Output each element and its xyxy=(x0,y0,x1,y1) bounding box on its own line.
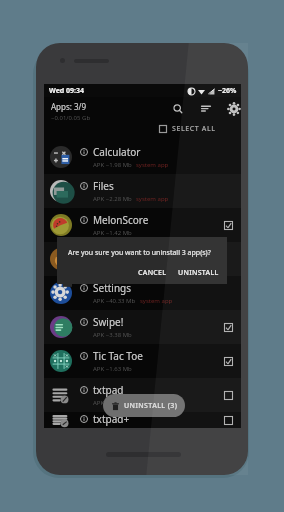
staticText: UNINSTALL (3) xyxy=(124,401,178,411)
staticText: APK ~40.33 Mb xyxy=(93,297,136,305)
staticText: APK ~2.05 Mb xyxy=(93,399,132,407)
button[interactable]: MelonScore xyxy=(44,208,241,242)
staticText: system app xyxy=(136,161,169,169)
button[interactable]: CANCEL xyxy=(135,266,170,280)
staticText: APK ~1.63 Mb xyxy=(93,365,132,373)
staticText: system app xyxy=(140,297,173,305)
button[interactable]: Sort xyxy=(198,101,213,116)
staticText: txtpad+ xyxy=(93,412,130,426)
staticText: APK ~1.98 Mb xyxy=(93,161,132,169)
button[interactable]: Swipe! xyxy=(44,310,241,344)
button[interactable]: UNINSTALL (3) xyxy=(103,394,185,417)
staticText: Are you sure you want to uninstall 3 app… xyxy=(68,248,211,258)
staticText: Settings xyxy=(93,281,132,295)
staticText: ~26% xyxy=(218,86,237,96)
button[interactable]: Files xyxy=(44,174,241,208)
staticText: UNINSTALL xyxy=(178,268,219,278)
staticText: Tic Tac Toe xyxy=(93,349,143,363)
button[interactable]: UNINSTALL xyxy=(175,266,222,280)
staticText: system app xyxy=(136,263,169,271)
staticText: ~0.01/0.05 Gb xyxy=(51,114,91,122)
button[interactable]: txtpad xyxy=(44,378,241,412)
button[interactable]: Settings xyxy=(44,276,241,310)
staticText: txtpad xyxy=(93,383,124,397)
staticText: system app xyxy=(136,195,169,203)
staticText: APK ~2.28 Mb xyxy=(93,195,132,203)
staticText: Music xyxy=(93,247,121,261)
button[interactable]: Music xyxy=(44,242,241,276)
button[interactable]: Select txtpad+ xyxy=(220,412,236,428)
button[interactable]: txtpad+ xyxy=(44,412,241,428)
button[interactable]: Settings xyxy=(226,101,241,116)
staticText: SELECT ALL xyxy=(172,124,216,134)
staticText: MelonScore xyxy=(93,213,149,227)
staticText: APK ~1.42 Mb xyxy=(93,229,132,237)
staticText: Files xyxy=(93,179,114,193)
button[interactable]: Tic Tac Toe xyxy=(44,344,241,378)
button[interactable]: Calculator xyxy=(44,140,241,174)
staticText: Apps: 3/9 xyxy=(51,101,87,112)
staticText: Calculator xyxy=(93,145,141,159)
button[interactable]: SELECT ALL xyxy=(157,123,218,135)
staticText: APK ~3.38 Mb xyxy=(93,331,132,339)
staticText: Swipe! xyxy=(93,315,124,329)
button[interactable]: Select txtpad xyxy=(220,387,236,403)
staticText: CANCEL xyxy=(138,268,167,278)
button[interactable]: Select MelonScore xyxy=(220,217,236,233)
staticText: Wed 09:34 xyxy=(49,86,85,96)
button[interactable]: Select Tic Tac Toe xyxy=(220,353,236,369)
button[interactable]: Search xyxy=(170,101,185,116)
button[interactable]: Select Swipe! xyxy=(220,319,236,335)
